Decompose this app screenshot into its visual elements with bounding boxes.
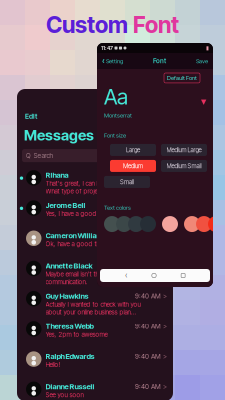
button[interactable]: Jerome Bell bbox=[17, 200, 173, 230]
staticText: Medium Large bbox=[166, 146, 201, 154]
staticText: Montserrat bbox=[104, 112, 132, 119]
staticText: 9:40 AM bbox=[135, 352, 161, 360]
staticText: Small bbox=[120, 178, 134, 186]
staticText: Font bbox=[133, 11, 179, 38]
staticText: 9:40 AM bbox=[135, 382, 161, 391]
button[interactable]: Guy Hawkins bbox=[17, 291, 173, 321]
button[interactable]: ‹ bbox=[102, 56, 123, 66]
staticText: Cameron Williamson bbox=[45, 231, 115, 240]
staticText: Dianne Russell bbox=[45, 382, 94, 391]
staticText: Yes, I have a good idea. bbox=[45, 210, 111, 218]
staticText: ▾ bbox=[201, 95, 206, 108]
staticText: See you soon bbox=[45, 391, 83, 399]
staticText: > bbox=[163, 292, 167, 300]
staticText: 11:47 bbox=[101, 45, 113, 51]
staticText: Rihana bbox=[45, 171, 68, 180]
staticText: communication. bbox=[45, 278, 87, 286]
staticText: Medium Small bbox=[166, 162, 201, 170]
button[interactable]: Ralph Edwards bbox=[17, 351, 173, 381]
staticText: Jerome Bell bbox=[45, 201, 85, 210]
staticText: 9:40 AM bbox=[135, 292, 161, 300]
staticText: Font size bbox=[104, 132, 126, 139]
staticText: ‹ bbox=[125, 271, 127, 280]
staticText: Text colors bbox=[104, 204, 131, 211]
staticText: Messages bbox=[24, 126, 94, 144]
staticText: ▮ bbox=[206, 45, 209, 51]
button[interactable]: Medium Large bbox=[161, 144, 207, 156]
staticText: Save bbox=[196, 57, 208, 65]
button[interactable]: Dianne Russell bbox=[17, 381, 173, 400]
staticText: Q bbox=[26, 152, 31, 159]
staticText: Medium bbox=[123, 162, 143, 170]
button[interactable]: Cameron Williamson bbox=[17, 230, 173, 261]
staticText: Edit bbox=[25, 112, 37, 120]
staticText: Default Font bbox=[167, 74, 197, 81]
staticText: Aa bbox=[104, 84, 128, 110]
staticText: Yes, 2pm to awesome bbox=[45, 331, 107, 338]
staticText: about your online business plan... bbox=[45, 308, 136, 316]
staticText: Annette Black bbox=[45, 261, 92, 270]
staticText: Setting bbox=[106, 57, 123, 65]
button[interactable]: Medium Small bbox=[161, 160, 207, 172]
button[interactable]: Annette Black bbox=[17, 261, 173, 291]
staticText: Ok, have a good time! bbox=[45, 240, 107, 248]
button[interactable]: Large bbox=[110, 144, 156, 156]
staticText: Custom bbox=[46, 11, 133, 38]
staticText: > bbox=[163, 382, 167, 391]
button[interactable]: Theresa Webb bbox=[17, 321, 173, 351]
button[interactable]: Rihana bbox=[17, 170, 173, 200]
button[interactable]: Q bbox=[17, 149, 173, 162]
staticText: What type of project? bbox=[45, 187, 105, 195]
staticText: Large bbox=[126, 146, 140, 154]
button[interactable]: Medium bbox=[110, 160, 156, 172]
staticText: Actually I wanted to check with you bbox=[45, 300, 140, 308]
staticText: Theresa Webb bbox=[45, 322, 93, 331]
staticText: > bbox=[163, 352, 167, 360]
button[interactable]: Edit bbox=[17, 112, 37, 120]
staticText: ‹ bbox=[102, 56, 105, 66]
button[interactable]: Default Font bbox=[164, 73, 200, 83]
staticText: Maybe email isn't the best way to bbox=[45, 270, 136, 278]
staticText: > bbox=[163, 322, 167, 330]
button[interactable]: Save bbox=[196, 57, 208, 65]
staticText: That's great, I can help you. bbox=[45, 180, 121, 187]
staticText: Ralph Edwards bbox=[45, 352, 94, 361]
button[interactable]: Small bbox=[104, 176, 150, 188]
staticText: Search bbox=[33, 152, 53, 160]
staticText: Font bbox=[153, 57, 166, 65]
staticText: 9:40 AM bbox=[135, 322, 161, 330]
staticText: Guy Hawkins bbox=[45, 291, 88, 300]
staticText: Hello! bbox=[45, 361, 60, 369]
